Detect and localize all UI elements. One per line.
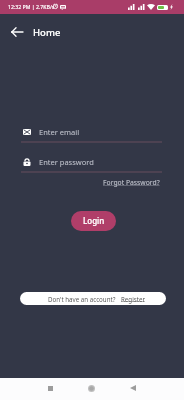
staticText: 12:32 PM | 2.7KB/s <box>8 3 55 10</box>
staticText: Home <box>33 26 61 38</box>
staticText: Enter password <box>39 157 94 167</box>
button[interactable]: Back <box>5 20 29 44</box>
staticText: Register <box>121 295 145 303</box>
staticText: Forgot Password? <box>103 178 160 187</box>
staticText: Enter email <box>39 127 80 137</box>
button[interactable]: Don't have an account? <box>20 292 166 305</box>
button[interactable] <box>21 124 162 143</box>
button[interactable]: Forgot Password? <box>103 178 160 187</box>
button[interactable]: Home <box>81 378 101 400</box>
button[interactable] <box>21 154 162 173</box>
staticText: Login <box>83 215 105 226</box>
button[interactable]: Recents <box>40 378 60 400</box>
button[interactable]: Back <box>123 378 143 400</box>
staticText: Don't have an account? <box>48 295 116 303</box>
button[interactable]: Login <box>71 211 116 231</box>
